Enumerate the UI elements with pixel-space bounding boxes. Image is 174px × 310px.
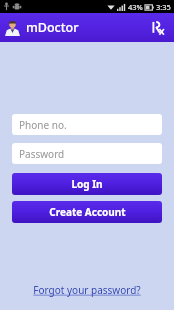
staticText: 3:35 (156, 2, 171, 12)
button[interactable]: Phone no. (12, 114, 162, 135)
button[interactable]: Create Account (12, 201, 162, 223)
button[interactable]: Log In (12, 173, 162, 195)
staticText: 43% (128, 2, 143, 12)
staticText: Create Account (49, 205, 126, 219)
staticText: Forgot your password? (33, 283, 141, 297)
staticText: Phone no. (19, 118, 67, 132)
button[interactable]: Password (12, 143, 162, 164)
staticText: Password (19, 147, 65, 161)
staticText: Log In (71, 177, 103, 191)
button[interactable]: Forgot your password? (27, 280, 147, 300)
button[interactable]: Prescriptions (148, 18, 168, 38)
staticText: mDoctor (26, 19, 79, 36)
button[interactable]: mDoctor (4, 19, 79, 36)
